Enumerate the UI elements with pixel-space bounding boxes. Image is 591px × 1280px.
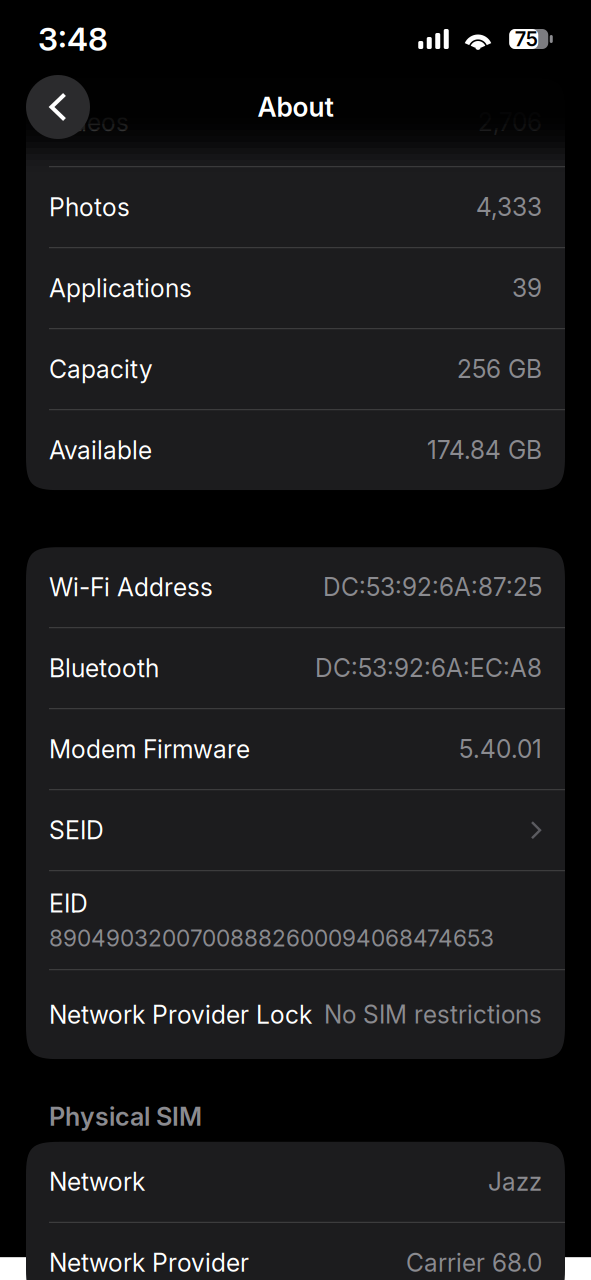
button[interactable]: Network Provider Lock [26, 970, 565, 1059]
staticText: 4,333 [476, 192, 542, 222]
staticText: DC:53:92:6A:EC:A8 [315, 653, 542, 683]
staticText: EID [49, 888, 88, 918]
button[interactable]: Bluetooth [26, 628, 565, 708]
button[interactable]: Applications [26, 248, 565, 328]
staticText: DC:53:92:6A:87:25 [323, 572, 542, 602]
button[interactable]: Back [26, 75, 90, 139]
staticText: 3:48 [38, 20, 108, 58]
staticText: Videos [49, 107, 129, 137]
staticText: About [257, 91, 333, 123]
button[interactable]: EID [26, 871, 565, 969]
staticText: 75 [515, 27, 538, 51]
button[interactable]: Network [26, 1142, 565, 1222]
staticText: Capacity [49, 354, 153, 384]
staticText: Network Provider Lock [49, 1000, 312, 1030]
button[interactable]: Capacity [26, 329, 565, 409]
staticText: 174.84 GB [427, 435, 542, 465]
staticText: 39 [512, 273, 542, 303]
staticText: No SIM restrictions [324, 1000, 542, 1029]
staticText: Carrier 68.0 [406, 1248, 542, 1278]
staticText: Network [49, 1167, 145, 1197]
staticText: Jazz [488, 1167, 542, 1197]
button[interactable]: Photos [26, 167, 565, 247]
staticText: Network Provider [49, 1248, 249, 1278]
staticText: 5.40.01 [459, 734, 542, 764]
button[interactable]: Modem Firmware [26, 709, 565, 789]
staticText: 89049032007008882600094068474653 [49, 924, 494, 952]
button[interactable]: Wi-Fi Address [26, 547, 565, 627]
button[interactable]: Available [26, 410, 565, 490]
staticText: Physical SIM [49, 1101, 202, 1132]
staticText: Applications [49, 273, 192, 303]
staticText: SEID [49, 815, 104, 845]
button[interactable]: SEID [26, 790, 565, 870]
staticText: 256 GB [457, 354, 542, 384]
staticText: Wi-Fi Address [49, 572, 213, 602]
button[interactable]: Videos [26, 78, 565, 166]
staticText: 2,706 [478, 107, 542, 137]
staticText: Available [49, 435, 152, 465]
button[interactable]: Network Provider [26, 1223, 565, 1280]
staticText: Photos [49, 192, 130, 222]
staticText: Modem Firmware [49, 734, 250, 764]
staticText: Bluetooth [49, 653, 159, 683]
